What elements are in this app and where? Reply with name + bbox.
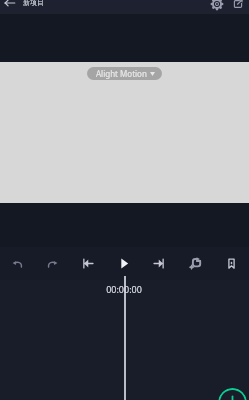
button[interactable]: Undo [0, 247, 35, 280]
staticText: 00:00:00 [106, 283, 142, 295]
button[interactable]: Play [105, 247, 141, 280]
staticText: 新项目 [23, 0, 44, 7]
button[interactable]: Settings [211, 0, 223, 10]
button[interactable]: Redo [35, 247, 70, 280]
button[interactable]: Add layer [218, 388, 247, 400]
button[interactable]: Skip to end [141, 247, 177, 280]
button[interactable]: Skip to start [70, 247, 105, 280]
button[interactable]: Bookmark [213, 247, 249, 280]
button[interactable]: Alight Motion [87, 67, 162, 80]
button[interactable]: Back [4, 0, 16, 9]
button[interactable]: Auto loop [177, 247, 213, 280]
staticText: Alight Motion [96, 68, 147, 79]
button[interactable]: Export [232, 0, 244, 10]
